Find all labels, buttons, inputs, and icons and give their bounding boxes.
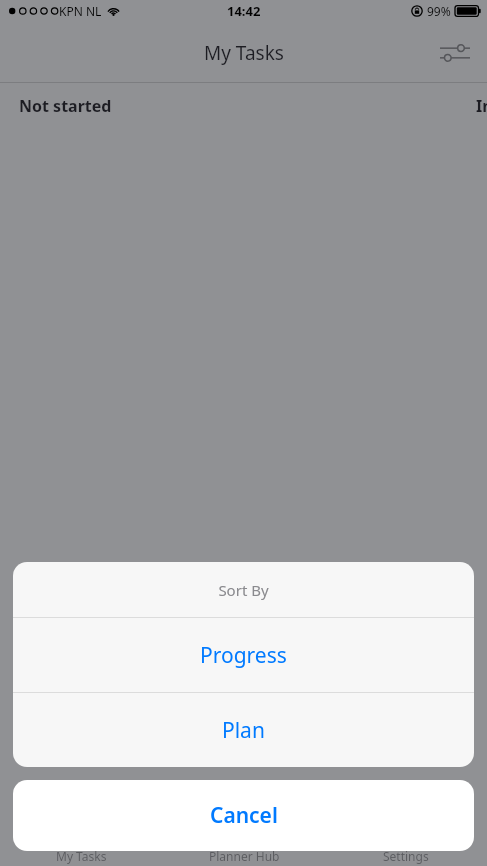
staticText: My Tasks — [204, 40, 284, 66]
staticText: KPN NL — [59, 3, 102, 19]
staticText: Settings — [383, 848, 429, 864]
button[interactable]: Progress — [13, 618, 474, 692]
staticText: Cancel — [210, 801, 278, 830]
staticText: 14:42 — [227, 2, 261, 20]
button[interactable]: Plan — [13, 693, 474, 767]
button[interactable]: Settings — [325, 820, 487, 866]
button[interactable]: My Tasks — [0, 820, 163, 866]
staticText: Plan — [222, 716, 265, 745]
staticText: My Tasks — [56, 848, 107, 864]
staticText: In — [476, 95, 487, 117]
staticText: Progress — [200, 641, 287, 670]
staticText: Planner Hub — [209, 848, 280, 864]
staticText: 99% — [427, 3, 451, 19]
button[interactable]: Sort and filter — [433, 31, 477, 75]
button[interactable]: Planner Hub — [163, 820, 325, 866]
button[interactable]: Cancel — [13, 780, 474, 851]
staticText: Not started — [19, 95, 112, 117]
staticText: Sort By — [218, 580, 269, 600]
